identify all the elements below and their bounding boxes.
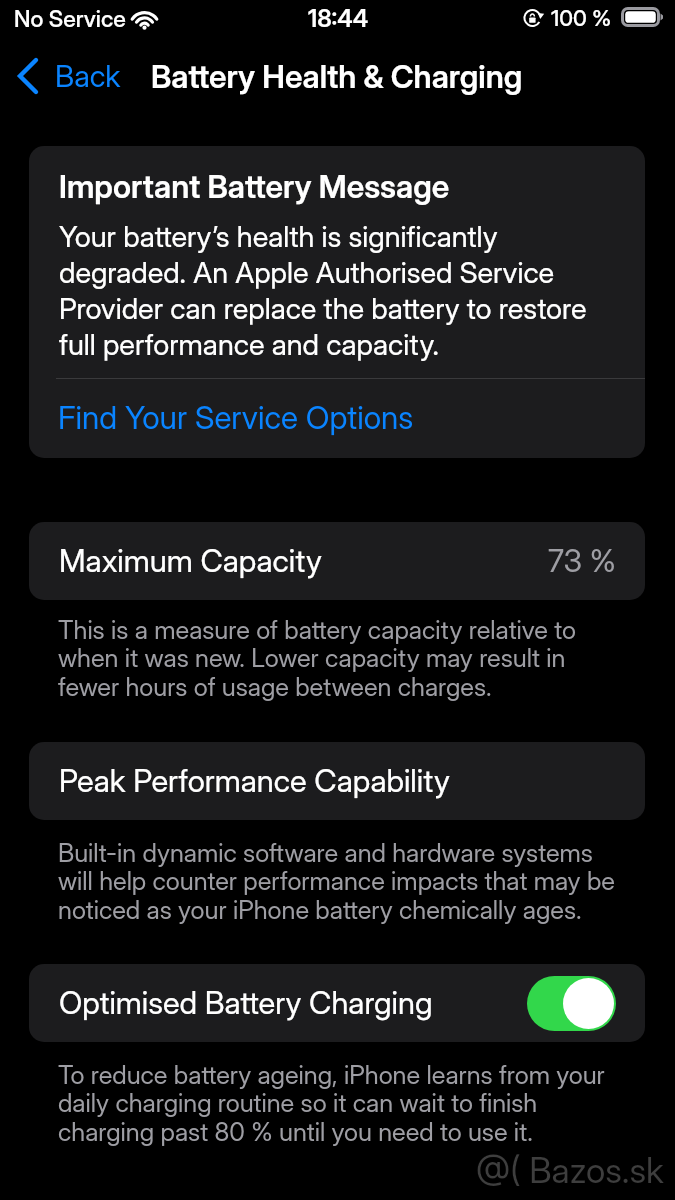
staticText: Important Battery Message: [59, 167, 450, 205]
staticText: Your battery’s health is significantly d…: [59, 219, 615, 362]
staticText: 73 %: [548, 542, 616, 580]
staticText: 100 %: [551, 5, 612, 32]
staticText: Peak Performance Capability: [59, 762, 450, 800]
staticText: Built-in dynamic software and hardware s…: [58, 837, 623, 925]
staticText: 18:44: [308, 4, 369, 33]
button[interactable]: Optimised Battery Charging toggle: [527, 976, 616, 1031]
staticText: No Service: [14, 5, 126, 33]
button[interactable]: Find Your Service Options: [29, 379, 645, 458]
button[interactable]: Back: [12, 54, 131, 98]
button[interactable]: Optimised Battery Charging: [29, 964, 645, 1042]
staticText: This is a measure of battery capacity re…: [58, 614, 623, 702]
staticText: To reduce battery ageing, iPhone learns …: [58, 1059, 623, 1147]
staticText: Optimised Battery Charging: [59, 984, 433, 1022]
button[interactable]: Peak Performance Capability: [29, 742, 645, 820]
staticText: Battery Health & Charging: [151, 57, 523, 95]
staticText: Find Your Service Options: [58, 398, 414, 436]
staticText: Back: [55, 58, 121, 94]
staticText: Maximum Capacity: [59, 542, 322, 580]
button[interactable]: Maximum Capacity: [29, 522, 645, 600]
staticText: @( Bazos.sk: [476, 1149, 664, 1191]
